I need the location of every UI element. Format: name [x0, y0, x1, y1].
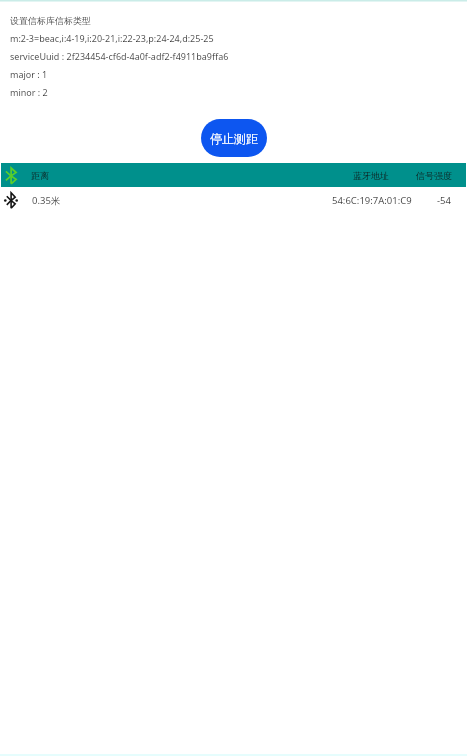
staticText: 蓝牙地址: [353, 170, 389, 181]
staticText: 设置信标库信标类型: [10, 15, 91, 26]
staticText: minor : 2: [10, 86, 48, 98]
staticText: -54: [437, 194, 451, 207]
other: Bluetooth connected: [0, 192, 22, 209]
staticText: major : 1: [10, 68, 48, 80]
staticText: 0.35米: [32, 194, 61, 207]
button[interactable]: Bluetooth connected: [0, 187, 467, 214]
staticText: 停止测距: [210, 131, 258, 146]
staticText: 距离: [31, 170, 49, 181]
button[interactable]: 停止测距: [201, 119, 267, 157]
other: Bluetooth: [0, 166, 21, 185]
staticText: serviceUuid : 2f234454-cf6d-4a0f-adf2-f4…: [10, 50, 229, 62]
staticText: 54:6C:19:7A:01:C9: [332, 194, 412, 207]
staticText: m:2-3=beac,i:4-19,i:20-21,i:22-23,p:24-2…: [10, 32, 214, 44]
staticText: 信号强度: [416, 170, 452, 181]
